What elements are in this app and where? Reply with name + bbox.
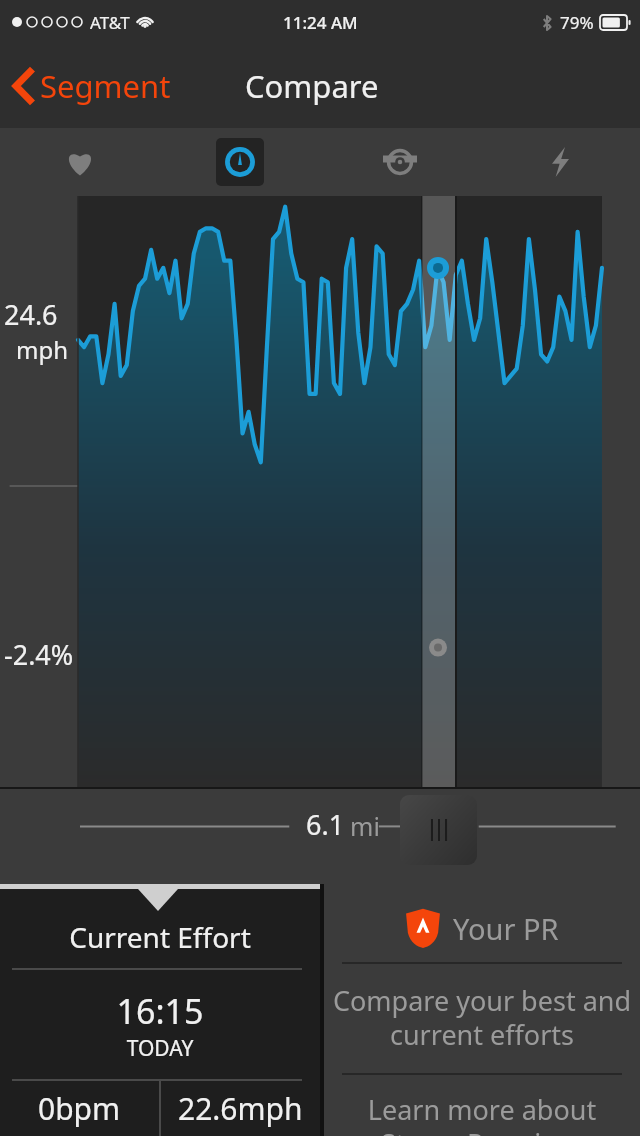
button[interactable]: Power	[480, 128, 640, 196]
staticText: Segment	[40, 65, 171, 107]
button[interactable]: Cadence	[320, 128, 480, 196]
button[interactable]: 22.6mph	[161, 1081, 320, 1136]
staticText: TODAY	[0, 1034, 320, 1063]
staticText: 22.6mph	[178, 1088, 303, 1129]
staticText: -2.4%	[4, 636, 74, 673]
staticText: mph	[16, 333, 69, 366]
staticText: 16:15	[0, 988, 320, 1034]
button[interactable]	[0, 196, 640, 788]
staticText: 0bpm	[38, 1088, 121, 1129]
button[interactable]: Scrub handle	[400, 795, 477, 865]
button[interactable]: 0bpm	[0, 1081, 159, 1136]
staticText: mi	[350, 809, 380, 843]
staticText: 11:24 AM	[283, 11, 358, 34]
button[interactable]: Current Effort	[0, 884, 320, 1136]
staticText: 6.1	[306, 806, 345, 843]
button[interactable]: Speed	[160, 128, 320, 196]
staticText: AT&T	[90, 11, 130, 34]
staticText: Learn more about Strava Premium	[324, 1091, 640, 1136]
staticText: Compare your best and current efforts	[324, 982, 640, 1053]
button[interactable]: Heart rate	[0, 128, 160, 196]
staticText: 24.6	[4, 296, 58, 333]
button[interactable]: Segment	[0, 57, 183, 115]
staticText: 79%	[560, 11, 594, 34]
button[interactable]: Your PR	[324, 884, 640, 1136]
staticText: Your PR	[453, 909, 559, 948]
staticText: Current Effort	[0, 918, 320, 956]
staticText: Compare	[245, 65, 379, 107]
